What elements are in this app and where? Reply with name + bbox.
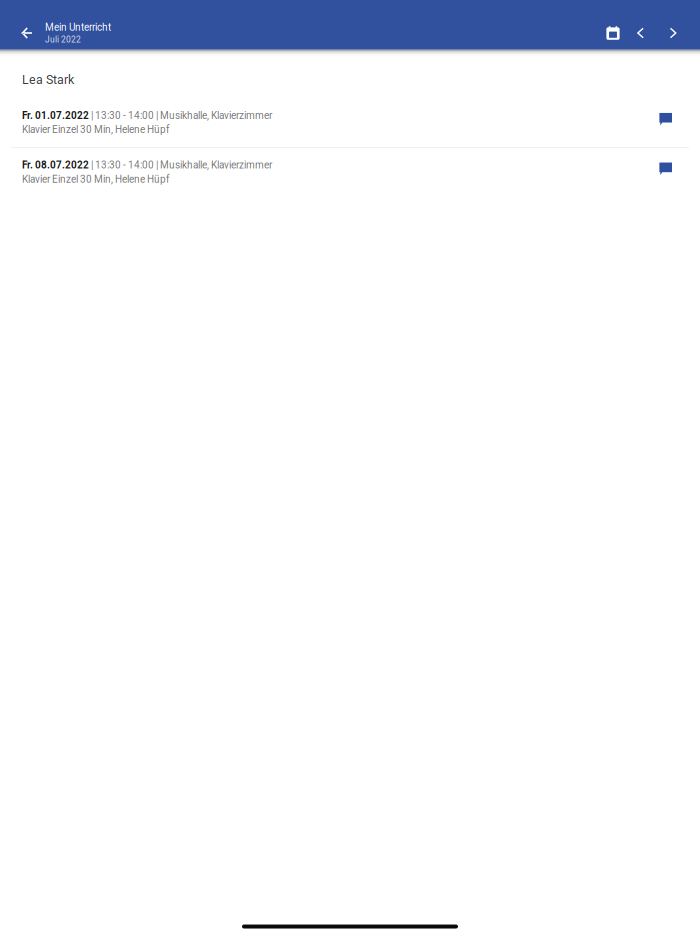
staticText: Fr. 01.07.2022	[22, 110, 89, 121]
button[interactable]: Calendar	[589, 17, 630, 49]
button[interactable]: Next month	[660, 17, 700, 49]
button[interactable]: Fr. 08.07.2022	[0, 148, 700, 197]
staticText: | 13:30 - 14:00 | Musikhalle, Klavierzim…	[89, 110, 272, 121]
staticText: Juli 2022	[45, 35, 81, 45]
button[interactable]: Previous month	[630, 17, 660, 49]
staticText: Klavier Einzel 30 Min, Helene Hüpf	[22, 173, 169, 185]
button[interactable]: Back	[0, 17, 45, 49]
staticText: Lea Stark	[22, 72, 74, 87]
staticText: Klavier Einzel 30 Min, Helene Hüpf	[22, 124, 169, 135]
staticText: | 13:30 - 14:00 | Musikhalle, Klavierzim…	[89, 159, 272, 171]
staticText: Mein Unterricht	[45, 21, 111, 33]
staticText: Fr. 08.07.2022	[22, 159, 89, 171]
button[interactable]: Fr. 01.07.2022	[0, 98, 700, 147]
